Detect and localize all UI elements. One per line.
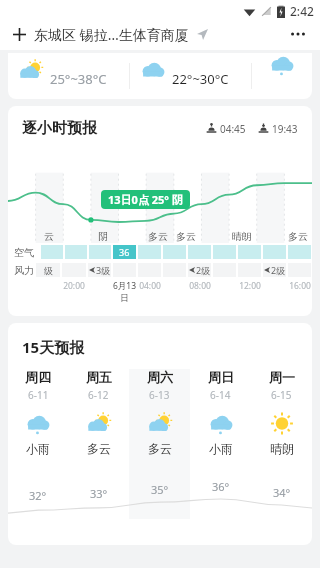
staticText: 6-11 [28,388,49,402]
staticText: 阴 [98,230,108,243]
staticText: 36 [119,246,130,258]
staticText: 云 [44,230,54,243]
staticText: 多云 [288,230,308,243]
button[interactable]: 逐小时预报 [8,106,312,316]
staticText: 34° [273,485,291,500]
staticText: 15天预报 [22,337,85,357]
staticText: 多云 [148,441,172,456]
staticText: 22°~30°C [172,70,229,88]
staticText: 2:42 [290,3,314,19]
button[interactable]: 周一 [251,369,312,456]
staticText: 空气 [14,246,40,259]
staticText: 04:00 [139,280,161,292]
staticText: 6-15 [271,388,292,402]
staticText: 35° [151,482,169,497]
staticText: 晴朗 [232,230,252,243]
staticText: 3级 [96,264,111,276]
staticText: 周一 [269,369,295,385]
staticText: 20:00 [63,280,85,292]
staticText: 16:00 [289,280,311,292]
button[interactable]: Add city [10,25,28,43]
staticText: 13日0点 25° 阴 [108,192,183,207]
staticText: 33° [90,486,108,501]
button[interactable]: 周五 [68,369,129,456]
button[interactable]: 周日 [190,369,251,456]
staticText: 36° [212,479,230,494]
staticText: 19:43 [272,122,298,136]
staticText: 风力 [14,264,35,277]
button[interactable]: 周四 [8,369,68,456]
staticText: 多云 [176,230,196,243]
staticText: 6-12 [88,388,109,402]
staticText: 周五 [86,369,112,385]
button[interactable]: 15天预报 [8,323,312,545]
staticText: 25°~38°C [50,70,107,88]
button[interactable]: 周六 [129,369,190,456]
staticText: 04:45 [220,122,246,136]
button[interactable]: More options [286,22,310,46]
staticText: 晴朗 [270,441,294,456]
button[interactable]: 25°~38°C [8,53,312,99]
staticText: 6-14 [210,388,231,402]
staticText: 小雨 [209,441,233,456]
staticText: 小雨 [26,441,50,456]
staticText: 32° [29,488,47,503]
button[interactable]: Location [195,27,209,41]
staticText: 多云 [148,230,168,243]
staticText: 2级 [196,264,211,276]
staticText: 级 [44,265,53,276]
staticText: 周日 [208,369,234,385]
staticText: 08:00 [189,280,211,292]
staticText: 6月13日 [112,280,137,303]
staticText: 周四 [25,369,51,385]
staticText: 东城区 锡拉…生体育商厦 [34,25,189,44]
staticText: 2级 [271,264,286,276]
staticText: 逐小时预报 [22,119,97,138]
staticText: 6-13 [149,388,170,402]
staticText: 12:00 [239,280,261,292]
staticText: 多云 [87,441,111,456]
staticText: 周六 [147,369,173,385]
